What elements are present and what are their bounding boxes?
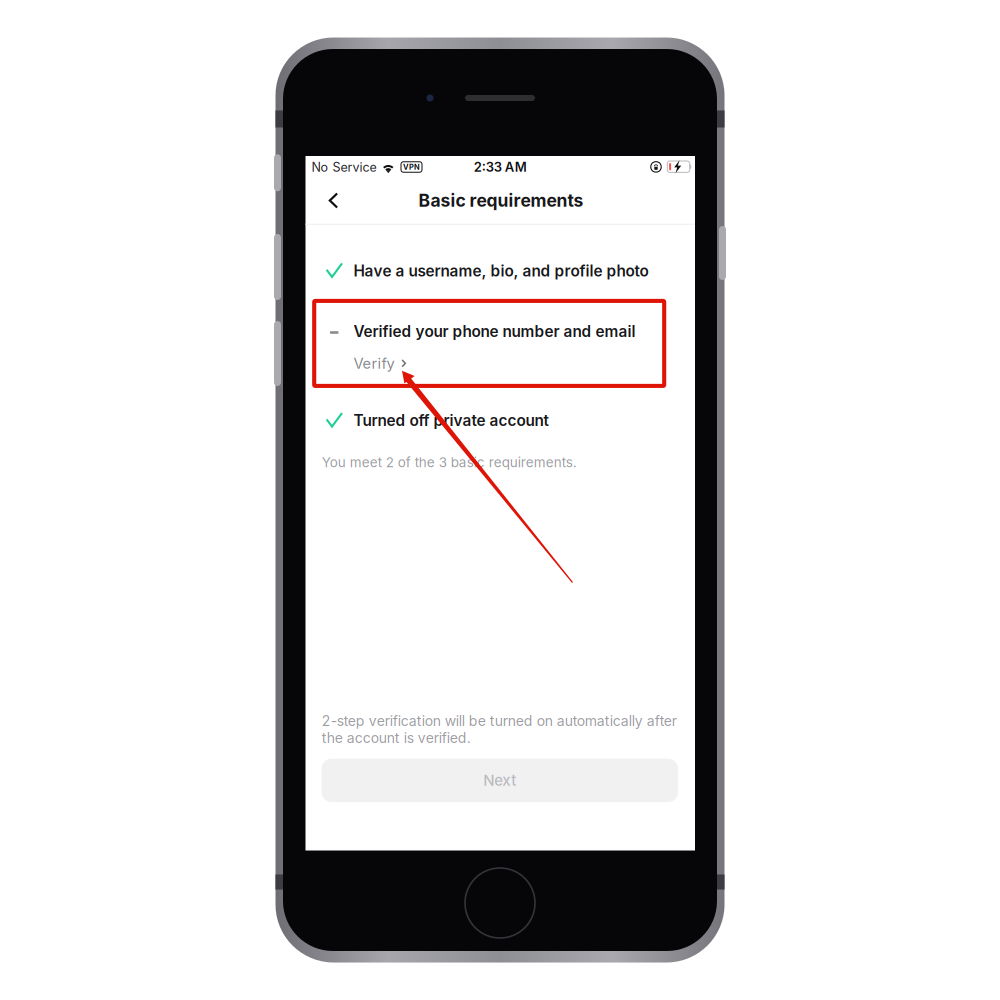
staticText: 2-step verification will be turned on au… [322, 713, 677, 746]
staticText: Basic requirements [418, 190, 583, 211]
button[interactable]: Have a username, bio, and profile photo [325, 256, 665, 286]
staticText: Have a username, bio, and profile photo [354, 261, 649, 280]
staticText: Next [483, 771, 516, 789]
button[interactable]: Back [313, 178, 353, 222]
staticText: Verify [354, 354, 395, 372]
staticText: You meet 2 of the 3 basic requirements. [322, 454, 577, 471]
staticText: Verified your phone number and email [354, 322, 636, 341]
button[interactable]: Verified your phone number and email [325, 316, 665, 378]
staticText: Turned off private account [354, 411, 549, 430]
button[interactable]: Turned off private account [325, 405, 665, 435]
button[interactable]: Next [322, 759, 678, 802]
staticText: 2:33 AM [474, 159, 527, 175]
staticText: VPN [403, 162, 420, 171]
staticText: No Service [311, 160, 376, 175]
